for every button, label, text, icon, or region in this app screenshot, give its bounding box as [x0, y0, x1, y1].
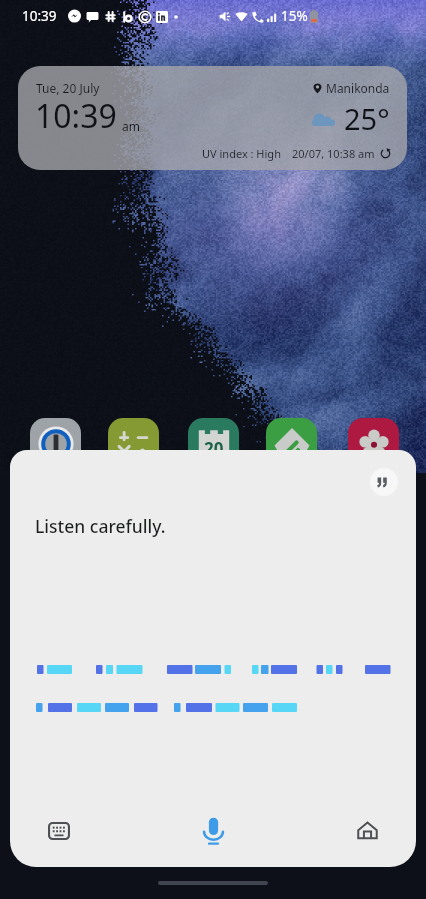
button[interactable]: Keyboard: [37, 809, 81, 853]
button[interactable]: [266, 418, 317, 469]
staticText: 10:39: [22, 7, 57, 25]
button[interactable]: Microphone: [191, 809, 235, 853]
staticText: 20/07, 10:38 am: [292, 146, 375, 161]
button[interactable]: Home: [345, 809, 389, 853]
staticText: Manikonda: [326, 80, 390, 96]
button[interactable]: [108, 418, 159, 469]
staticText: Listen carefully.: [35, 514, 166, 538]
button[interactable]: 20: [188, 418, 239, 469]
staticText: 25°: [344, 99, 390, 138]
button[interactable]: Transcript: [370, 468, 398, 496]
staticText: 20: [204, 437, 224, 460]
button[interactable]: [348, 418, 399, 469]
button[interactable]: Tue, 20 July: [18, 66, 407, 170]
staticText: 15%: [281, 7, 308, 25]
staticText: Tue, 20 July: [36, 80, 100, 96]
button[interactable]: [30, 418, 81, 469]
staticText: UV index : High: [202, 146, 281, 161]
staticText: am: [122, 118, 140, 134]
staticText: 10:39: [35, 94, 117, 138]
